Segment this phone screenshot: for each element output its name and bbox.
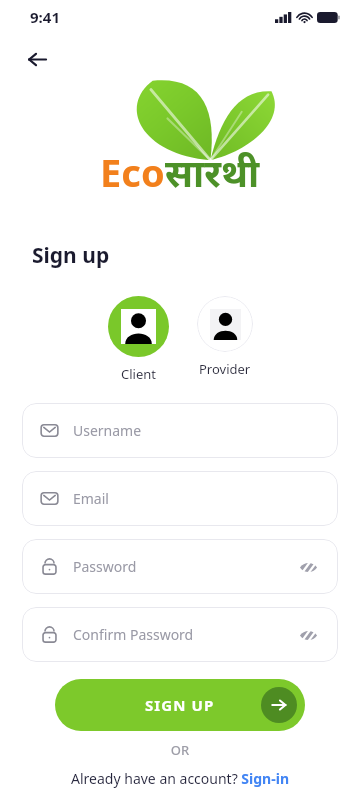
staticText: SIGN UP: [145, 695, 215, 715]
staticText: Password: [73, 557, 296, 576]
staticText: Provider: [199, 360, 251, 378]
staticText: OR: [0, 741, 360, 759]
staticText: सारथी: [165, 146, 260, 198]
staticText: Client: [121, 365, 156, 383]
button[interactable]: Confirm Password: [22, 607, 338, 662]
staticText: Confirm Password: [73, 625, 296, 644]
other: Continue: [261, 687, 297, 723]
button[interactable]: Show password: [296, 623, 320, 647]
staticText: Username: [73, 421, 320, 440]
staticText: 9:41: [30, 7, 60, 27]
button[interactable]: Email: [22, 471, 338, 526]
staticText: Eco: [100, 146, 165, 198]
staticText: Already have an account? Sign-in: [71, 769, 289, 788]
button[interactable]: SIGN UP: [55, 679, 305, 731]
button[interactable]: Show password: [296, 555, 320, 579]
button[interactable]: Back: [20, 42, 54, 76]
button[interactable]: Username: [22, 403, 338, 458]
button[interactable]: Password: [22, 539, 338, 594]
staticText: Email: [73, 489, 320, 508]
button[interactable]: Provider: [193, 296, 257, 378]
button[interactable]: Already have an account? Sign-in: [0, 769, 360, 788]
staticText: Sign up: [32, 241, 110, 270]
button[interactable]: Client: [104, 296, 173, 383]
